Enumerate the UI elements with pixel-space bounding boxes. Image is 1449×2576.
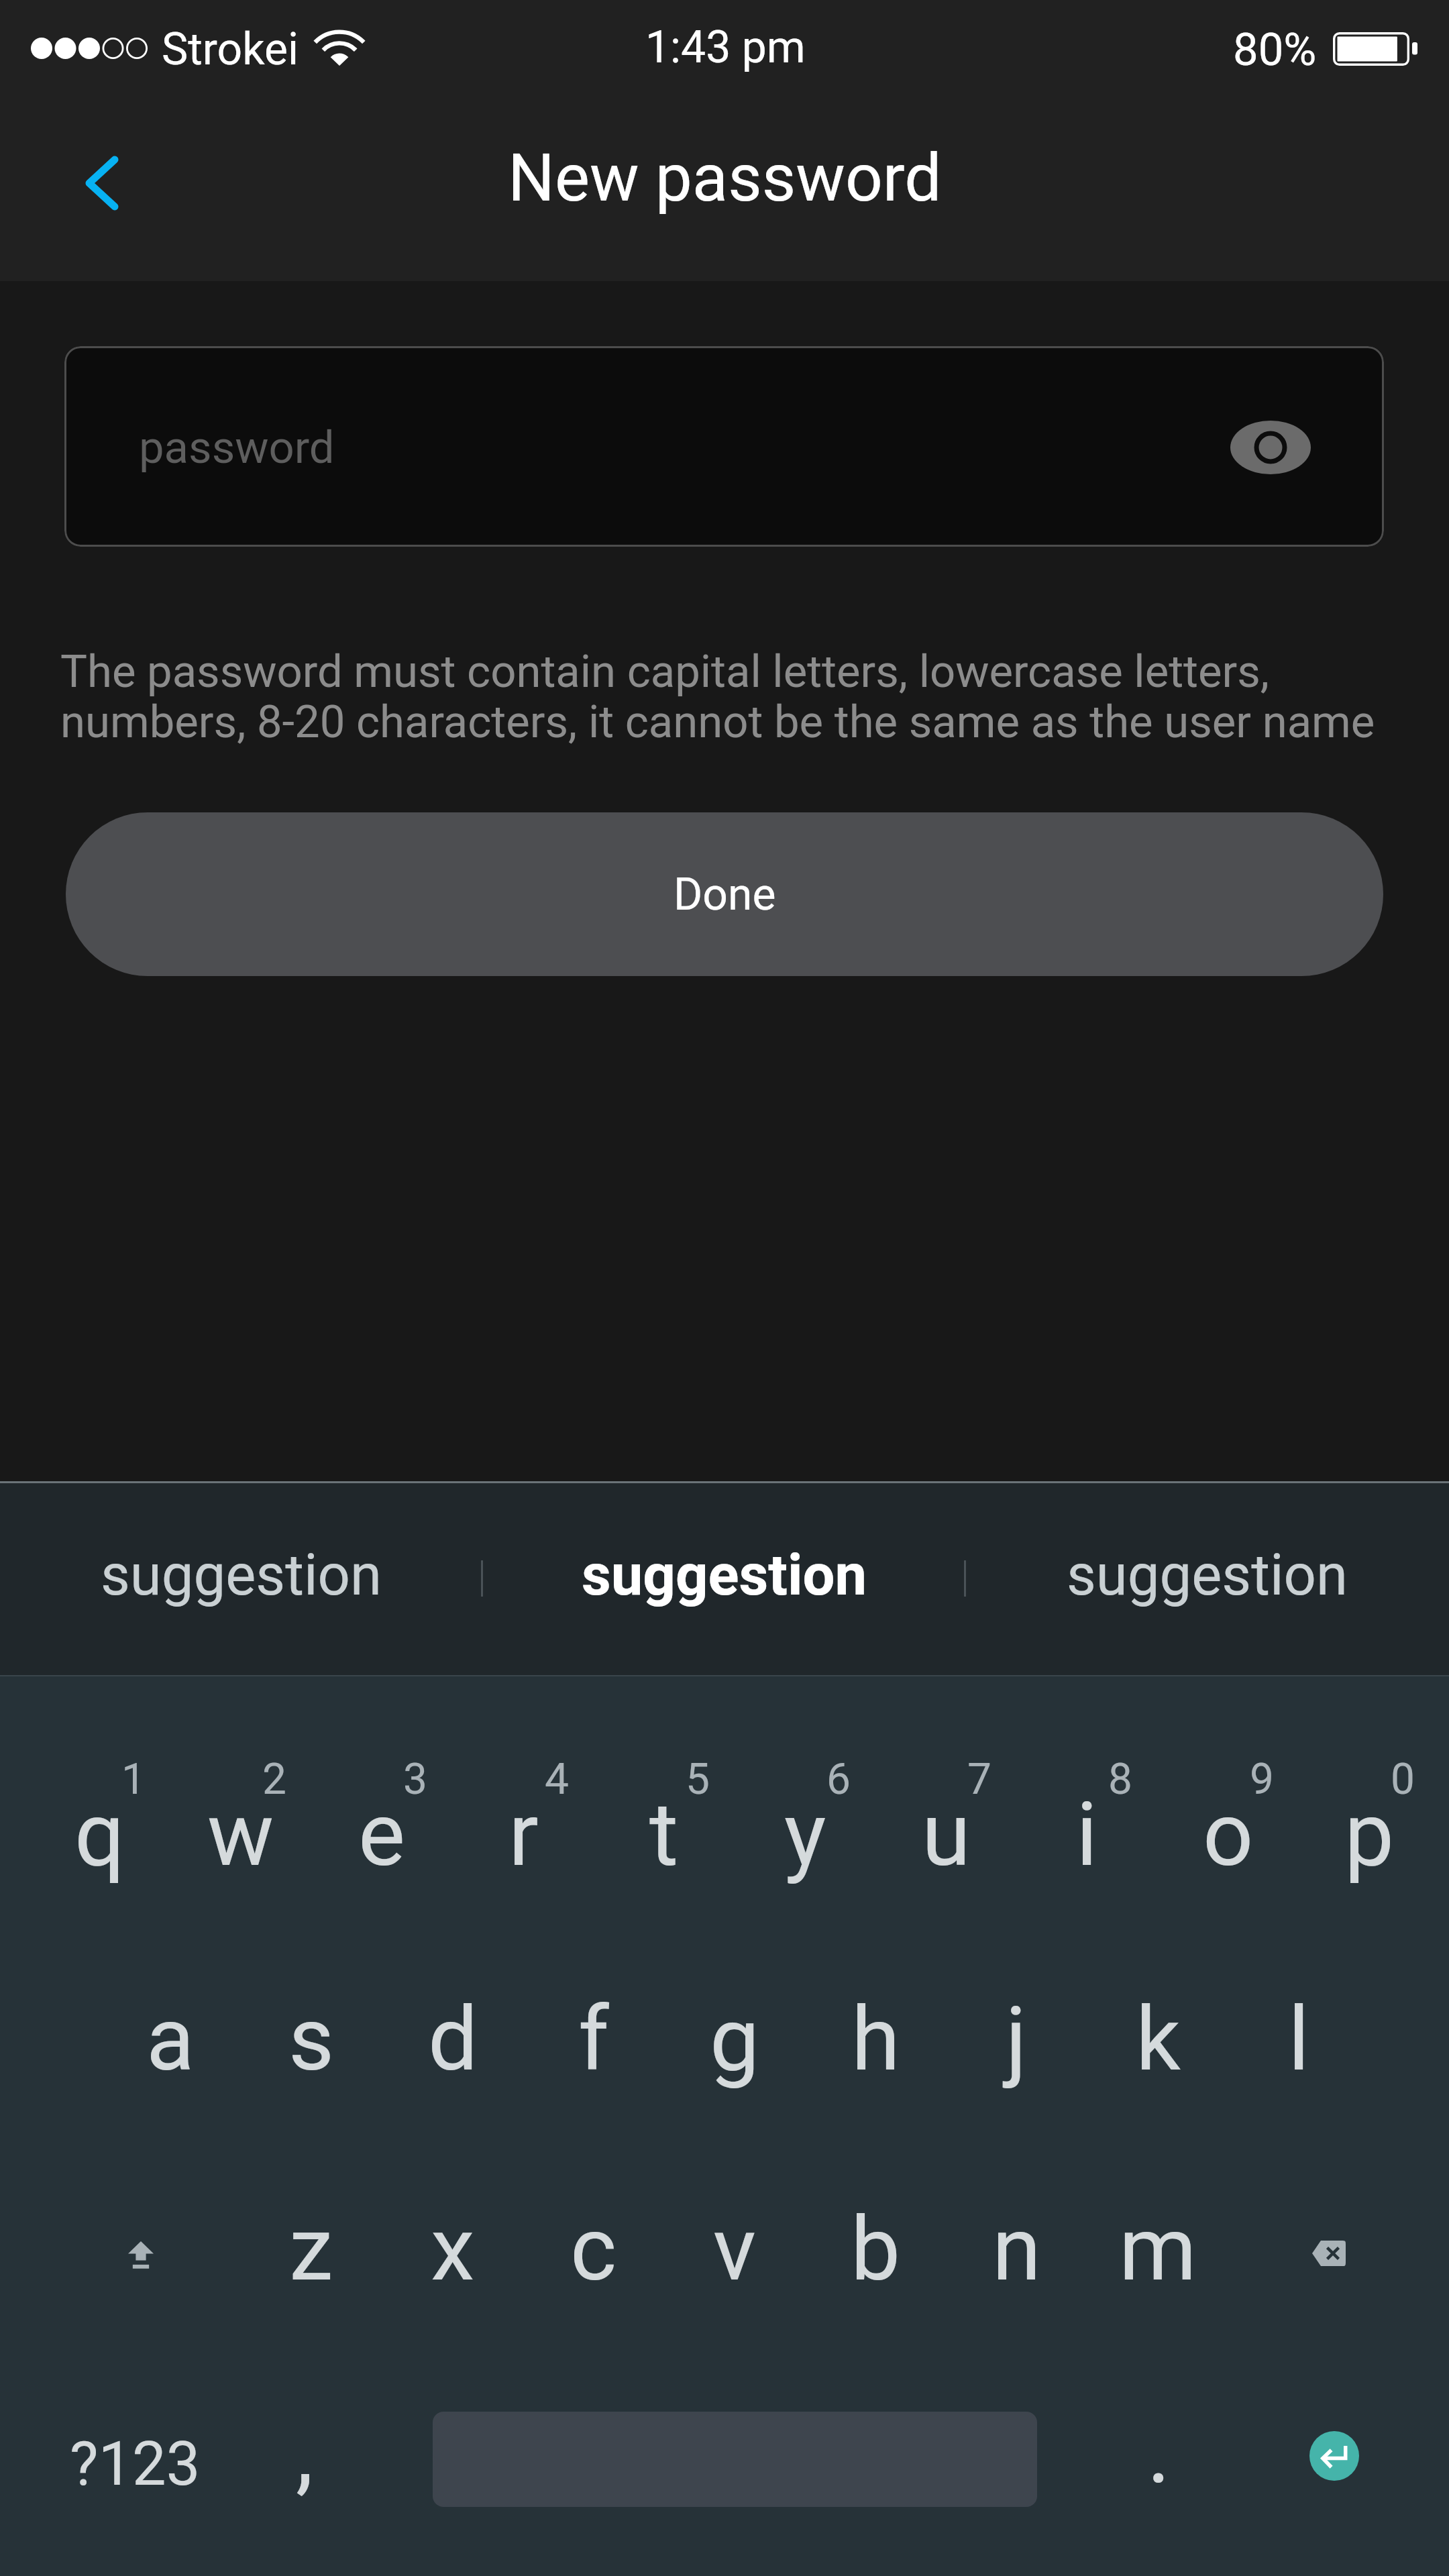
staticText: 4 (545, 1754, 569, 1805)
button[interactable]: l (1228, 1876, 1369, 2078)
staticText: suggestion (582, 1542, 867, 1609)
button[interactable]: 9 (1158, 1675, 1299, 1876)
staticText: New password (508, 140, 942, 217)
button[interactable]: n (946, 2078, 1087, 2279)
button[interactable]: 4 (453, 1675, 594, 1876)
button[interactable]: g (664, 1876, 805, 2078)
staticText: b (851, 2198, 901, 2302)
button[interactable]: x (382, 2078, 523, 2279)
staticText: 2 (262, 1754, 286, 1805)
button[interactable]: m (1087, 2078, 1228, 2279)
button[interactable]: s (241, 1876, 382, 2078)
staticText: m (1119, 2198, 1197, 2302)
staticText: password (139, 421, 335, 474)
staticText: i (1076, 1783, 1098, 1887)
button[interactable]: 6 (735, 1675, 875, 1876)
button[interactable]: suggestion (966, 1478, 1449, 1672)
staticText: h (851, 1988, 900, 2092)
button[interactable]: Enter (1228, 2279, 1440, 2480)
button[interactable]: Done (66, 812, 1383, 976)
staticText: y (784, 1783, 826, 1887)
staticText: x (431, 2198, 475, 2302)
staticText: ?123 (70, 2429, 201, 2500)
staticText: d (428, 1988, 478, 2092)
staticText: p (1344, 1783, 1395, 1887)
staticText: 5 (686, 1754, 710, 1805)
button[interactable]: Space (382, 2279, 1087, 2480)
button[interactable]: suggestion (0, 1478, 483, 1672)
staticText: Strokei (162, 23, 299, 75)
staticText: 3 (403, 1754, 427, 1805)
staticText: l (1288, 1988, 1310, 2092)
staticText: k (1136, 1988, 1181, 2092)
button[interactable]: Back (62, 134, 147, 236)
staticText: . (1147, 2400, 1171, 2504)
staticText: z (289, 2198, 333, 2302)
staticText: n (992, 2198, 1041, 2302)
button[interactable]: ?123 (30, 2279, 241, 2480)
button[interactable]: suggestion (483, 1478, 966, 1672)
staticText: a (146, 1988, 195, 2092)
button[interactable]: 5 (594, 1675, 735, 1876)
button[interactable]: h (805, 1876, 946, 2078)
staticText: The password must contain capital letter… (60, 645, 1399, 749)
staticText: 1:43 pm (645, 21, 806, 73)
staticText: s (288, 1988, 335, 2092)
button[interactable]: 7 (875, 1675, 1016, 1876)
button[interactable]: Backspace (1228, 2078, 1440, 2279)
staticText: t (649, 1783, 679, 1887)
staticText: o (1203, 1783, 1254, 1887)
staticText: , (296, 2402, 313, 2506)
staticText: c (570, 2198, 617, 2302)
staticText: 1 (121, 1754, 146, 1805)
staticText: r (508, 1783, 539, 1887)
button[interactable]: v (664, 2078, 805, 2279)
button[interactable]: , (241, 2279, 382, 2480)
button[interactable]: f (523, 1876, 664, 2078)
button[interactable]: 2 (170, 1675, 311, 1876)
button[interactable]: k (1087, 1876, 1228, 2078)
staticText: 7 (967, 1754, 991, 1805)
staticText: q (74, 1783, 125, 1887)
button[interactable]: 1 (30, 1675, 170, 1876)
staticText: j (1006, 1988, 1027, 2092)
staticText: 6 (826, 1754, 851, 1805)
button[interactable]: d (382, 1876, 523, 2078)
staticText: suggestion (1067, 1542, 1348, 1609)
staticText: 0 (1391, 1754, 1415, 1805)
button[interactable]: password (64, 346, 1384, 547)
staticText: 80% (1233, 23, 1317, 76)
button[interactable]: 8 (1016, 1675, 1157, 1876)
button[interactable]: . (1087, 2279, 1228, 2480)
button[interactable]: j (946, 1876, 1087, 2078)
staticText: 8 (1108, 1754, 1132, 1805)
staticText: suggestion (101, 1542, 382, 1609)
staticText: g (710, 1988, 760, 2092)
button[interactable]: Shift (30, 2078, 241, 2279)
staticText: Done (674, 869, 776, 920)
button[interactable]: c (523, 2078, 664, 2279)
staticText: u (922, 1783, 971, 1887)
staticText: f (578, 1988, 609, 2092)
staticText: w (207, 1783, 274, 1887)
button[interactable]: 3 (311, 1675, 452, 1876)
staticText: 9 (1250, 1754, 1274, 1805)
staticText: v (713, 2198, 756, 2302)
button[interactable]: a (100, 1876, 241, 2078)
staticText: e (358, 1783, 405, 1887)
button[interactable]: 0 (1299, 1675, 1440, 1876)
button[interactable]: Show password (1210, 417, 1331, 478)
button[interactable]: z (241, 2078, 382, 2279)
button[interactable]: b (805, 2078, 946, 2279)
